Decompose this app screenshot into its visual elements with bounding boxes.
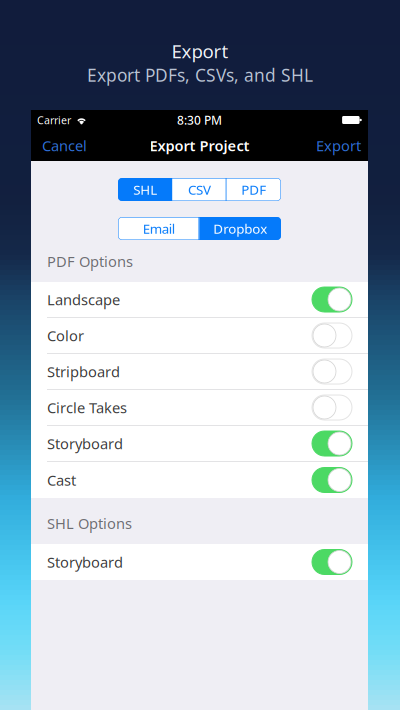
button[interactable]: Export — [310, 130, 367, 161]
staticText: SHL Options — [47, 513, 132, 533]
staticText: Email — [143, 220, 175, 237]
staticText: Carrier — [37, 113, 71, 127]
button[interactable]: Cancel — [32, 130, 97, 161]
staticText: Circle Takes — [47, 398, 127, 417]
staticText: Export Project — [149, 136, 249, 155]
button[interactable]: Dropbox — [199, 217, 281, 240]
button[interactable]: Storyboard — [31, 426, 368, 462]
staticText: Stripboard — [47, 362, 120, 381]
staticText: Cast — [47, 470, 76, 490]
staticText: Export — [316, 136, 361, 155]
button[interactable]: PDF — [227, 178, 281, 201]
button[interactable]: Color — [31, 318, 368, 354]
staticText: CSV — [188, 181, 211, 198]
staticText: Storyboard — [47, 552, 123, 572]
staticText: PDF — [241, 181, 266, 198]
staticText: 8:30 PM — [177, 112, 222, 128]
staticText: Color — [47, 326, 84, 345]
staticText: SHL — [133, 181, 157, 198]
button[interactable]: CSV — [172, 178, 227, 201]
staticText: Export — [171, 39, 228, 63]
staticText: Cancel — [42, 136, 87, 155]
button[interactable]: Circle Takes — [31, 390, 368, 426]
button[interactable]: Email — [118, 217, 199, 240]
button[interactable]: Storyboard — [31, 544, 368, 580]
button[interactable]: Landscape — [31, 282, 368, 318]
staticText: Landscape — [47, 290, 120, 309]
staticText: Dropbox — [213, 220, 267, 237]
button[interactable]: Stripboard — [31, 354, 368, 390]
staticText: Storyboard — [47, 434, 123, 453]
button[interactable]: SHL — [118, 178, 172, 201]
staticText: Export PDFs, CSVs, and SHL — [87, 63, 313, 86]
staticText: PDF Options — [47, 251, 133, 271]
button[interactable]: Cast — [31, 462, 368, 498]
